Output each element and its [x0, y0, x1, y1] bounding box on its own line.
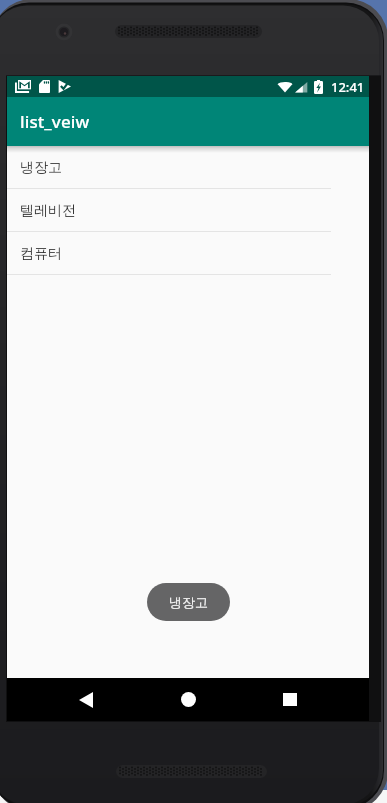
staticText: 컴퓨터 [20, 245, 62, 263]
staticText: list_veiw [20, 110, 90, 133]
button[interactable]: 컴퓨터 [7, 232, 369, 275]
button[interactable]: Recents [260, 678, 320, 721]
button[interactable]: 텔레비전 [7, 189, 369, 232]
button[interactable]: 냉장고 [147, 583, 230, 621]
button[interactable]: 냉장고 [7, 146, 369, 189]
staticText: 냉장고 [169, 594, 208, 610]
button[interactable]: Home [158, 678, 218, 721]
staticText: 냉장고 [20, 159, 62, 177]
staticText: 텔레비전 [20, 202, 76, 220]
staticText: 12:41 [331, 78, 365, 96]
button[interactable]: Back [56, 678, 116, 721]
